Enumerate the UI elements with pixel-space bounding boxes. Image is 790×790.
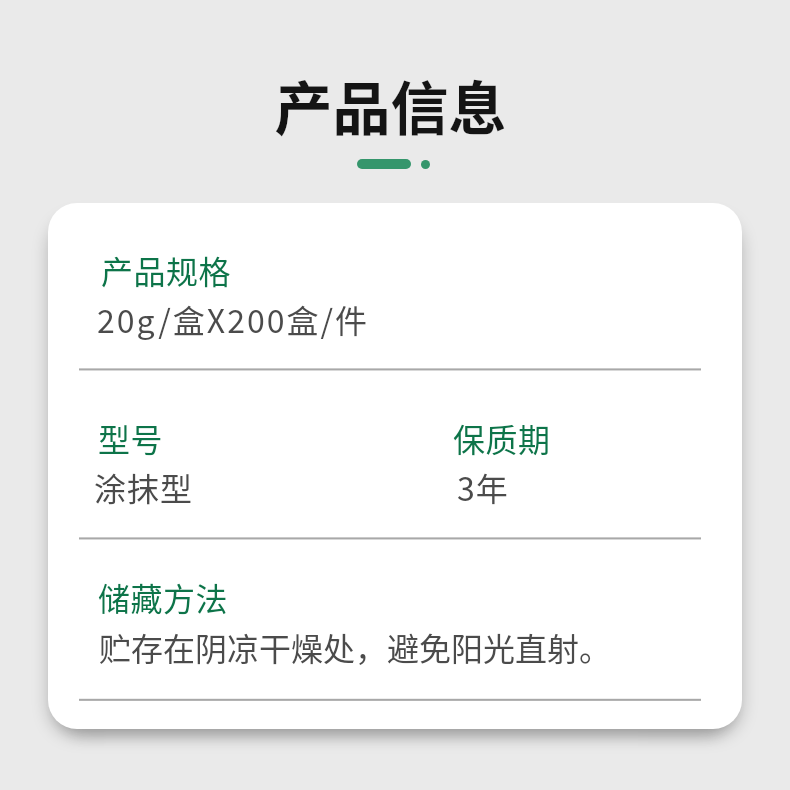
staticText: 产品信息 [274, 63, 507, 147]
staticText: 涂抹型 [94, 464, 194, 510]
staticText: 3年 [457, 464, 509, 510]
button[interactable]: 储藏方法 [79, 538, 701, 699]
staticText: 型号 [98, 415, 164, 461]
staticText: 产品规格 [101, 247, 232, 293]
other: Section accent [357, 159, 430, 169]
staticText: 贮存在阴凉干燥处，避免阳光直射。 [99, 624, 612, 670]
staticText: 20g/盒X200盒/件 [97, 296, 369, 342]
staticText: 储藏方法 [98, 574, 229, 620]
button[interactable]: 产品规格 [79, 217, 701, 369]
staticText: 保质期 [453, 415, 551, 461]
button[interactable]: 型号 [79, 369, 701, 538]
